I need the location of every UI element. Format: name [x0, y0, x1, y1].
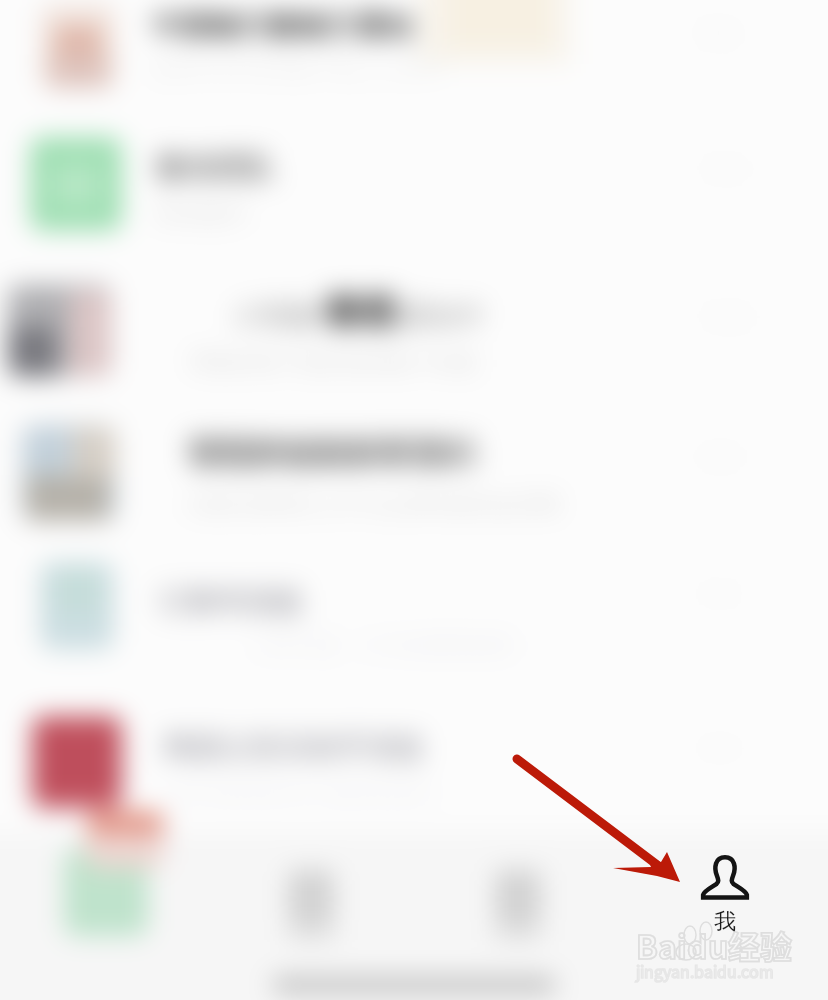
button[interactable]: 微信团队: [0, 115, 828, 259]
button[interactable]: 中国银行微银行通知: [0, 0, 828, 126]
staticText: 微信团队: [155, 149, 455, 187]
button[interactable]: 小明建行龙卡通知中: [0, 263, 828, 407]
other: Me tab: [702, 856, 748, 899]
staticText: 我: [714, 908, 736, 936]
button[interactable]: [207, 854, 414, 1000]
button[interactable]: 网易云音乐助手消息: [0, 694, 828, 838]
staticText: 中国银行微银行通知: [152, 8, 442, 45]
staticText: 齷齲: [412, 433, 552, 473]
staticText: 订阅号消息: [158, 584, 458, 621]
staticText: 鬱蠹黷籲齷齲鼕龘: [188, 433, 568, 473]
staticText: 鬱蠹: [326, 289, 446, 334]
staticText: 网易云音乐助手消息: [163, 730, 503, 767]
button[interactable]: [414, 854, 621, 1000]
button[interactable]: Me tab: [672, 842, 778, 942]
staticText: 小明建行龙卡通知中: [232, 299, 552, 334]
button[interactable]: [0, 854, 207, 1000]
button[interactable]: [621, 854, 828, 1000]
button[interactable]: 订阅号消息: [0, 540, 828, 684]
staticText: 每日推荐歌单已更新请查收: [170, 780, 570, 808]
button[interactable]: 鬱蠹黷籲齷齲鼕龘: [0, 403, 828, 547]
staticText: 您尾号0000的账户收入人民币: [152, 52, 582, 82]
staticText: 黷蠹: [196, 433, 316, 473]
